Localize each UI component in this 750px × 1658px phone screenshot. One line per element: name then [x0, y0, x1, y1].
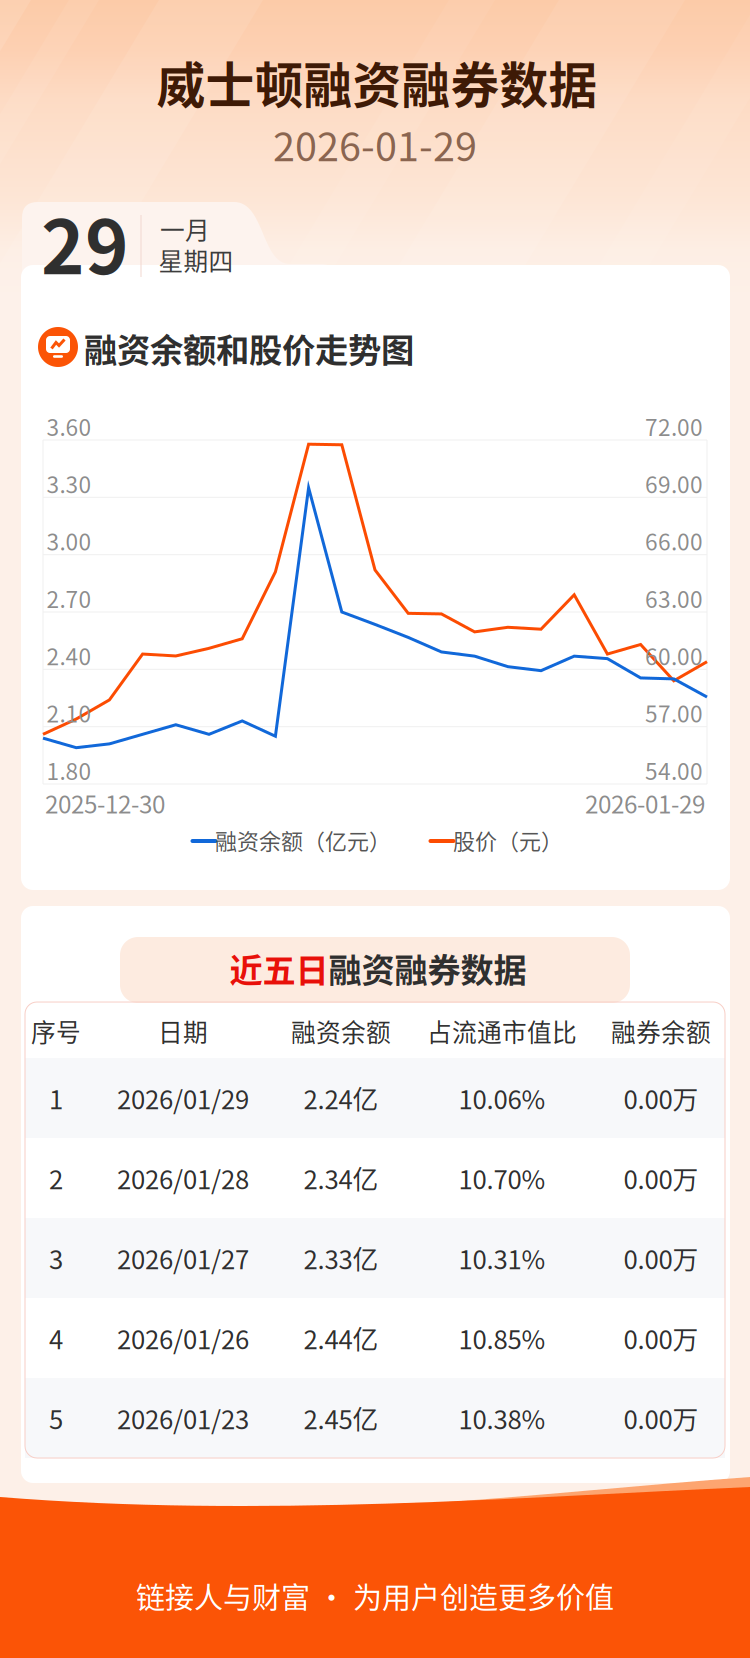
staticText: 近五日	[229, 944, 328, 992]
staticText: 0.00万	[623, 1079, 698, 1117]
staticText: 69.00	[645, 467, 703, 500]
staticText: 2.44亿	[303, 1319, 378, 1357]
staticText: 72.00	[645, 410, 703, 442]
staticText: 10.38%	[458, 1399, 545, 1437]
staticText: 股价（元）	[453, 824, 563, 856]
staticText: 54.00	[645, 754, 703, 786]
staticText: 10.70%	[458, 1159, 545, 1197]
staticText: 2.70	[46, 582, 91, 614]
staticText: 链接人与财富 · 为用户创造更多价值	[136, 1575, 614, 1617]
staticText: 2.33亿	[303, 1239, 378, 1277]
staticText: 0.00万	[623, 1319, 698, 1357]
staticText: 3.30	[46, 467, 91, 500]
staticText: 威士顿融资融券数据	[156, 47, 597, 117]
staticText: 63.00	[645, 582, 703, 614]
staticText: 3.00	[46, 524, 91, 557]
staticText: 2.45亿	[303, 1399, 378, 1437]
staticText: 5	[49, 1399, 63, 1437]
staticText: 2	[49, 1159, 63, 1197]
staticText: 0.00万	[623, 1159, 698, 1197]
staticText: 2.24亿	[303, 1079, 378, 1117]
staticText: 2026/01/28	[117, 1159, 249, 1197]
staticText: 2026/01/26	[117, 1319, 249, 1357]
staticText: 2.40	[46, 639, 91, 672]
staticText: 融资余额（亿元）	[215, 824, 391, 856]
staticText: 融资余额	[291, 1013, 391, 1049]
staticText: 序号	[31, 1013, 81, 1049]
staticText: 2026-01-29	[585, 785, 705, 820]
staticText: 2025-12-30	[45, 785, 165, 820]
staticText: 2.10	[46, 696, 91, 729]
staticText: 一月	[160, 211, 210, 247]
staticText: 29	[41, 188, 129, 295]
staticText: 2.34亿	[303, 1159, 378, 1197]
staticText: 10.06%	[458, 1079, 545, 1117]
staticText: 3	[49, 1239, 63, 1277]
staticText: 3.60	[46, 410, 91, 442]
staticText: 10.85%	[458, 1319, 545, 1357]
staticText: 57.00	[645, 696, 703, 729]
staticText: 0.00万	[623, 1399, 698, 1437]
staticText: 占流通市值比	[427, 1013, 577, 1049]
staticText: 2026-01-29	[273, 115, 477, 173]
staticText: 2026/01/23	[117, 1399, 249, 1437]
staticText: 融资余额和股价走势图	[84, 324, 414, 372]
staticText: 10.31%	[458, 1239, 545, 1277]
staticText: 2026/01/29	[117, 1079, 249, 1117]
staticText: 融资融券数据	[328, 944, 526, 992]
staticText: 日期	[158, 1013, 208, 1049]
staticText: 4	[49, 1319, 63, 1357]
staticText: 1.80	[46, 754, 91, 786]
staticText: 2026/01/27	[117, 1239, 249, 1277]
staticText: 66.00	[645, 524, 703, 557]
staticText: 60.00	[645, 639, 703, 672]
staticText: 融券余额	[611, 1013, 711, 1049]
staticText: 0.00万	[623, 1239, 698, 1277]
staticText: 1	[49, 1079, 63, 1117]
staticText: 星期四	[158, 242, 233, 278]
